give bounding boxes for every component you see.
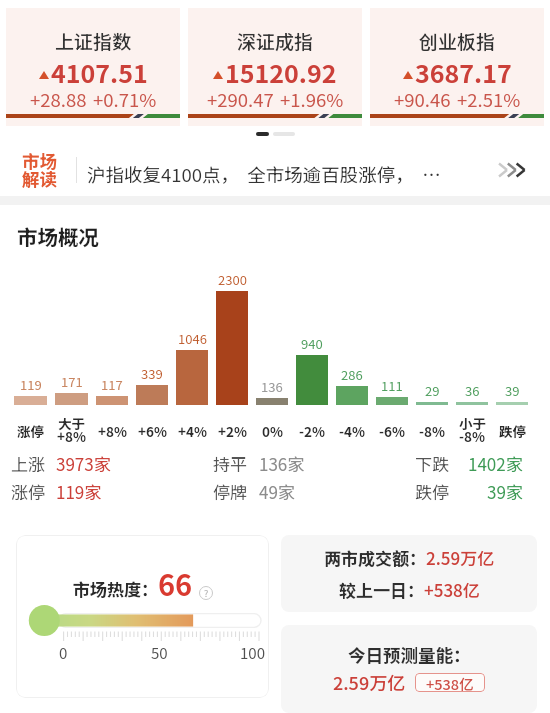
button[interactable]: 两市成交额： — [281, 535, 537, 612]
staticText: 50 — [151, 642, 168, 664]
staticText: 36 — [465, 381, 480, 400]
staticText: -8% — [459, 426, 485, 446]
staticText: +538亿 — [426, 673, 474, 692]
button[interactable]: 创业板指 — [370, 8, 544, 126]
staticText: 停牌 — [213, 479, 247, 501]
staticText: 2.59万亿 — [333, 669, 406, 695]
staticText: +4% — [178, 421, 207, 441]
staticText: 创业板指 — [419, 27, 496, 55]
button[interactable]: 深证成指 — [188, 8, 362, 126]
staticText: 两市成交额： — [324, 545, 426, 570]
staticText: 0% — [262, 421, 283, 441]
staticText: 市场概况 — [17, 221, 99, 251]
staticText: 深证成指 — [237, 27, 314, 55]
staticText: 涨停 — [17, 421, 44, 441]
staticText: 2300 — [218, 270, 247, 289]
staticText: +0.71% — [93, 86, 157, 113]
staticText: 117 — [101, 375, 123, 394]
staticText: 66 — [158, 562, 193, 604]
staticText: 今日预测量能： — [348, 642, 471, 667]
staticText: +8% — [57, 426, 86, 446]
staticText: 3973家 — [56, 451, 111, 473]
staticText: 上证指数 — [55, 27, 132, 55]
staticText: -8% — [419, 421, 445, 441]
staticText: 111 — [381, 376, 403, 395]
staticText: 4107.51 — [51, 54, 148, 90]
staticText: ? — [204, 587, 209, 600]
staticText: 136 — [261, 377, 283, 396]
staticText: 49家 — [259, 479, 295, 501]
staticText: -6% — [379, 421, 405, 441]
staticText: 119家 — [56, 479, 102, 501]
staticText: 跌停 — [499, 421, 526, 441]
staticText: +28.88 — [30, 86, 87, 113]
staticText: 286 — [341, 365, 363, 384]
staticText: 跌停 — [415, 479, 449, 501]
staticText: 小于 — [459, 413, 486, 433]
staticText: -2% — [299, 421, 325, 441]
staticText: 较上一日： — [339, 577, 424, 602]
other: 更多 — [497, 162, 527, 178]
button[interactable]: 市场 — [0, 144, 550, 196]
staticText: +2.51% — [457, 86, 521, 113]
staticText: +290.47 — [207, 86, 274, 113]
staticText: 上涨 — [11, 451, 45, 473]
staticText: +8% — [98, 421, 127, 441]
staticText: 136家 — [259, 451, 305, 473]
staticText: +1.96% — [280, 86, 344, 113]
staticText: 下跌 — [415, 451, 449, 473]
staticText: 171 — [61, 372, 83, 391]
staticText: 涨停 — [11, 479, 45, 501]
staticText: 0 — [59, 642, 68, 664]
staticText: 解读 — [22, 166, 57, 191]
staticText: 沪指收复4100点， 全市场逾百股涨停， … — [87, 161, 441, 188]
button[interactable]: 今日预测量能： — [281, 625, 537, 713]
staticText: -4% — [339, 421, 365, 441]
staticText: 339 — [141, 364, 163, 383]
staticText: 940 — [301, 334, 323, 353]
staticText: 119 — [20, 375, 42, 394]
button[interactable]: 上证指数 — [6, 8, 180, 126]
staticText: 39 — [505, 381, 520, 400]
button[interactable]: 市场热度： — [16, 535, 269, 698]
staticText: 100 — [240, 642, 265, 664]
staticText: 持平 — [213, 451, 247, 473]
staticText: 15120.92 — [225, 54, 337, 90]
staticText: +90.46 — [394, 86, 451, 113]
staticText: 3687.17 — [415, 54, 512, 90]
staticText: 39家 — [487, 479, 523, 501]
staticText: 1402家 — [468, 451, 523, 473]
staticText: 市场热度： — [73, 576, 158, 601]
staticText: 市场 — [22, 148, 57, 173]
staticText: +538亿 — [424, 577, 480, 602]
staticText: 29 — [425, 381, 440, 400]
staticText: 大于 — [58, 413, 85, 433]
staticText: 1046 — [178, 329, 207, 348]
staticText: 2.59万亿 — [426, 545, 495, 570]
staticText: +2% — [218, 421, 247, 441]
staticText: +6% — [138, 421, 167, 441]
